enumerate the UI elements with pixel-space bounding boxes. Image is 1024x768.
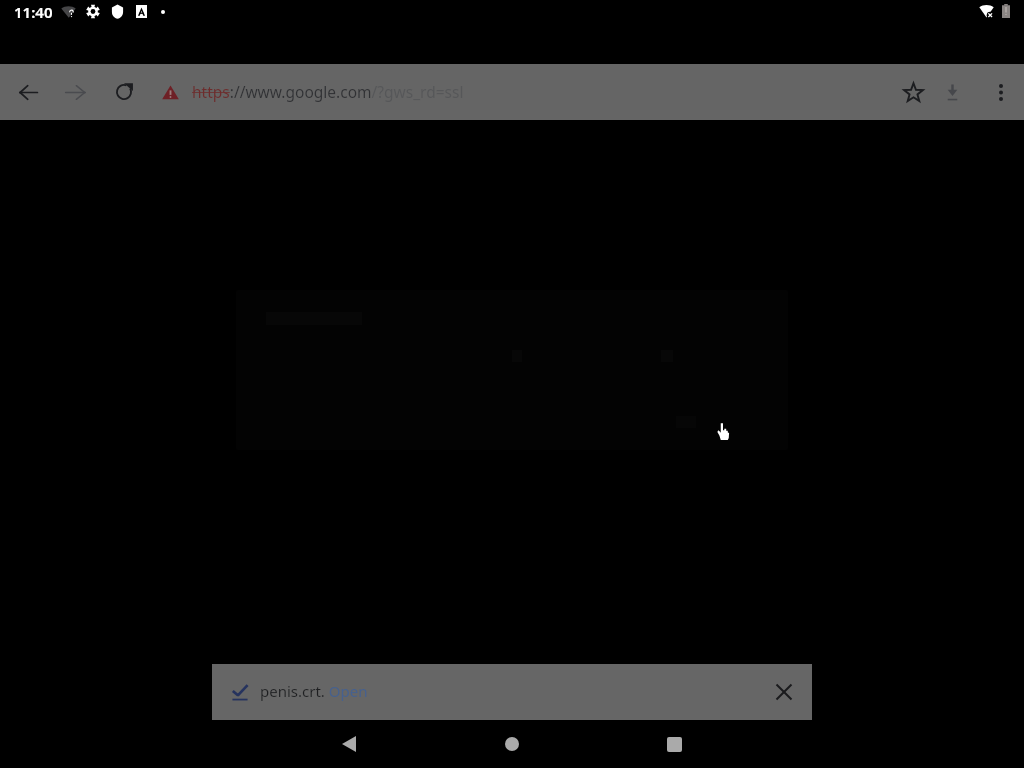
staticText: 11:40 bbox=[14, 2, 53, 22]
button[interactable]: penis.crt. Open bbox=[212, 664, 812, 720]
button[interactable]: Forward bbox=[51, 68, 99, 116]
staticText: penis.crt. Open bbox=[260, 681, 368, 701]
button[interactable]: Downloads bbox=[928, 68, 976, 116]
button[interactable]: Reload bbox=[100, 68, 148, 116]
button[interactable]: Bookmark bbox=[889, 68, 937, 116]
staticText: https://www.google.com/?gws_rd=ssl bbox=[192, 81, 464, 102]
button[interactable]: Back bbox=[325, 720, 373, 768]
button[interactable]: Recents bbox=[650, 720, 698, 768]
button[interactable]: Home bbox=[488, 720, 536, 768]
button[interactable]: Back bbox=[4, 68, 52, 116]
button[interactable]: More options bbox=[977, 68, 1024, 116]
button[interactable]: Close bbox=[764, 672, 804, 712]
